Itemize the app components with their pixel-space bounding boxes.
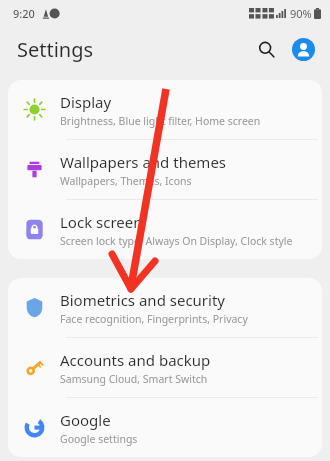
staticText: Samsung Cloud, Smart Switch: [60, 372, 208, 386]
staticText: Google settings: [60, 432, 138, 446]
staticText: Biometrics and security: [60, 290, 226, 310]
button[interactable]: Biometrics and security: [8, 278, 322, 337]
button[interactable]: Wallpapers and themes: [8, 140, 322, 199]
staticText: Wallpapers and themes: [60, 152, 227, 172]
staticText: Lock screen: [60, 212, 143, 232]
button[interactable]: Google: [8, 398, 322, 457]
staticText: Face recognition, Fingerprints, Privacy: [60, 312, 248, 326]
button[interactable]: Search: [250, 33, 282, 65]
button[interactable]: Lock screen: [8, 200, 322, 259]
staticText: Brightness, Blue light filter, Home scre…: [60, 114, 261, 128]
staticText: Settings: [17, 36, 94, 63]
staticText: Display: [60, 92, 112, 112]
staticText: Accounts and backup: [60, 350, 211, 370]
staticText: Google: [60, 410, 111, 430]
staticText: 9:20: [13, 6, 35, 21]
button[interactable]: Display: [8, 80, 322, 139]
button[interactable]: Accounts and backup: [8, 338, 322, 397]
button[interactable]: Account: [287, 33, 319, 65]
staticText: 90%: [290, 6, 312, 21]
staticText: Screen lock type, Always On Display, Clo…: [60, 234, 293, 248]
staticText: Wallpapers, Themes, Icons: [60, 174, 192, 188]
